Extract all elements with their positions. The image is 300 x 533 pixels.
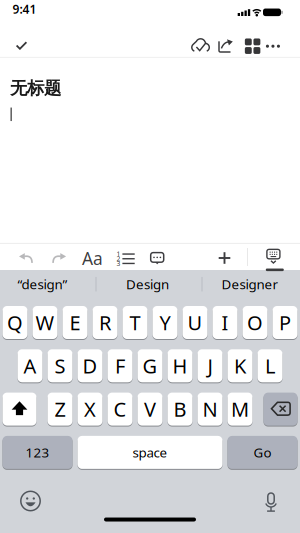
staticText: C <box>113 396 126 422</box>
button[interactable]: Text style <box>79 248 105 268</box>
button[interactable]: F <box>107 349 132 383</box>
button[interactable]: Comment <box>149 252 165 265</box>
button[interactable]: X <box>77 392 102 426</box>
staticText: P <box>279 309 291 336</box>
staticText: 2 <box>116 254 120 263</box>
button[interactable]: Designer <box>202 271 297 297</box>
button[interactable]: Lists <box>117 252 135 266</box>
staticText: 9:41 <box>12 1 36 17</box>
button[interactable]: “design” <box>0 271 90 297</box>
button[interactable]: Done <box>12 34 30 56</box>
staticText: Z <box>54 396 65 422</box>
button[interactable]: More <box>265 44 281 48</box>
staticText: 123 <box>25 443 49 461</box>
button[interactable]: Go <box>227 435 297 469</box>
button[interactable]: G <box>137 349 162 383</box>
button[interactable]: Undo <box>19 252 33 264</box>
staticText: B <box>173 396 186 422</box>
button[interactable]: Insert <box>219 252 230 264</box>
button[interactable]: Redo <box>52 252 66 264</box>
button[interactable]: R <box>92 305 117 339</box>
staticText: N <box>202 396 217 422</box>
button[interactable]: space <box>77 435 222 469</box>
staticText: W <box>35 309 54 336</box>
button[interactable]: U <box>182 305 207 339</box>
staticText: Y <box>159 309 170 336</box>
staticText: I <box>221 309 228 336</box>
button[interactable]: Dictate <box>264 492 277 512</box>
button[interactable]: Emoji <box>20 490 41 511</box>
button[interactable]: S <box>47 349 72 383</box>
staticText: J <box>207 352 212 379</box>
staticText: M <box>231 396 249 422</box>
button[interactable]: Y <box>152 305 177 339</box>
button[interactable]: J <box>197 349 222 383</box>
button[interactable]: A <box>17 349 42 383</box>
button[interactable]: 123 <box>2 435 72 469</box>
staticText: space <box>132 443 167 461</box>
staticText: Aa <box>82 247 103 270</box>
staticText: F <box>115 352 125 379</box>
button[interactable]: Grid <box>245 38 260 54</box>
staticText: G <box>142 352 157 379</box>
staticText: 1 <box>116 249 120 258</box>
staticText: H <box>172 352 187 379</box>
button[interactable]: P <box>272 305 297 339</box>
staticText: 3 <box>116 259 120 268</box>
button[interactable]: Shift <box>2 392 36 426</box>
button[interactable]: Q <box>2 305 27 339</box>
button[interactable]: O <box>242 305 267 339</box>
staticText: R <box>99 309 111 336</box>
button[interactable]: K <box>227 349 252 383</box>
button[interactable]: E <box>62 305 87 339</box>
staticText: Q <box>7 309 23 336</box>
staticText: D <box>82 352 97 379</box>
staticText: T <box>129 309 140 336</box>
button[interactable]: T <box>122 305 147 339</box>
staticText: “design” <box>17 275 67 293</box>
staticText: Design <box>126 275 169 293</box>
button[interactable]: V <box>137 392 162 426</box>
staticText: X <box>84 396 96 422</box>
button[interactable]: W <box>32 305 57 339</box>
staticText: U <box>187 309 202 336</box>
staticText: A <box>23 352 36 379</box>
staticText: 无标题 <box>10 78 61 99</box>
staticText: S <box>54 352 65 379</box>
button[interactable]: Share <box>217 37 235 55</box>
button[interactable]: Synced <box>190 36 211 56</box>
button[interactable]: Dismiss keyboard <box>266 249 280 263</box>
button[interactable]: Design <box>97 271 197 297</box>
button[interactable]: N <box>197 392 222 426</box>
button[interactable]: Delete <box>263 392 297 426</box>
button[interactable]: Z <box>47 392 72 426</box>
staticText: Designer <box>221 275 278 293</box>
button[interactable]: L <box>257 349 282 383</box>
staticText: L <box>265 352 275 379</box>
button[interactable]: M <box>227 392 252 426</box>
button[interactable]: D <box>77 349 102 383</box>
staticText: O <box>247 309 263 336</box>
button[interactable]: B <box>167 392 192 426</box>
staticText: K <box>234 352 246 379</box>
button[interactable]: H <box>167 349 192 383</box>
button[interactable]: I <box>212 305 237 339</box>
staticText: E <box>69 309 80 336</box>
staticText: Go <box>253 443 271 461</box>
staticText: V <box>144 396 156 422</box>
button[interactable]: C <box>107 392 132 426</box>
